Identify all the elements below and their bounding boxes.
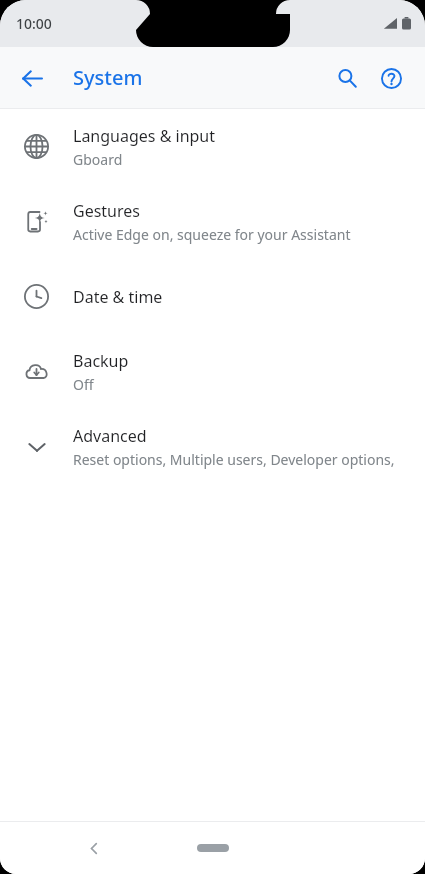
button[interactable]: Languages & input	[0, 109, 425, 184]
staticText: Off	[73, 375, 94, 394]
staticText: Backup	[73, 350, 129, 372]
staticText: 10:00	[16, 14, 52, 33]
button[interactable]: Help	[369, 56, 413, 100]
button[interactable]: Home	[188, 838, 238, 858]
button[interactable]: Search	[325, 56, 369, 100]
button[interactable]: Back	[10, 56, 54, 100]
staticText: Gestures	[73, 200, 140, 222]
staticText: Gboard	[73, 150, 123, 169]
staticText: Date & time	[73, 286, 163, 308]
button[interactable]: Date & time	[0, 259, 425, 334]
button[interactable]: Back	[72, 826, 116, 870]
button[interactable]: Advanced	[0, 409, 425, 484]
button[interactable]: Backup	[0, 334, 425, 409]
staticText: System	[73, 64, 143, 91]
staticText: Active Edge on, squeeze for your Assista…	[73, 225, 351, 244]
staticText: Reset options, Multiple users, Developer…	[73, 450, 407, 469]
staticText: Advanced	[73, 425, 147, 447]
staticText: Languages & input	[73, 125, 216, 147]
button[interactable]: Gestures	[0, 184, 425, 259]
